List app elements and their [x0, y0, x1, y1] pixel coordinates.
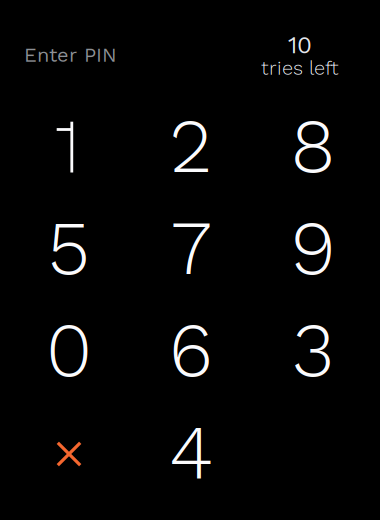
staticText: tries left [261, 56, 339, 80]
staticText: 8 [290, 101, 335, 190]
staticText: 7 [171, 203, 211, 292]
button[interactable]: 5 [8, 197, 130, 299]
button[interactable]: 0 [8, 299, 130, 401]
staticText: 3 [292, 305, 334, 394]
staticText: 9 [290, 203, 335, 292]
button[interactable]: 8 [252, 95, 374, 197]
button[interactable]: 6 [130, 299, 252, 401]
button[interactable]: 9 [252, 197, 374, 299]
button[interactable]: 1 [8, 95, 130, 197]
staticText: 5 [47, 203, 90, 292]
staticText: 2 [169, 101, 212, 190]
button[interactable]: 3 [252, 299, 374, 401]
staticText: 0 [46, 305, 92, 394]
staticText: 10 [288, 31, 312, 59]
staticText: Enter PIN [24, 43, 117, 67]
staticText: 4 [169, 407, 213, 496]
button[interactable]: 4 [130, 401, 252, 503]
staticText: 6 [169, 305, 213, 394]
button[interactable]: 7 [130, 197, 252, 299]
button[interactable]: 2 [130, 95, 252, 197]
button[interactable]: Delete [8, 401, 130, 503]
